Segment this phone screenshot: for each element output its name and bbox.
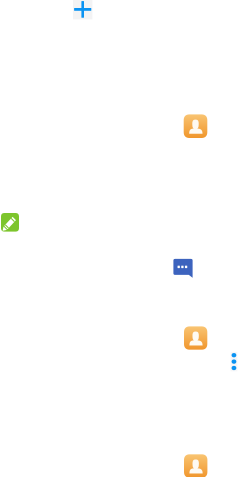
button[interactable]: Add (73, 0, 92, 19)
button[interactable]: More (231, 352, 237, 371)
